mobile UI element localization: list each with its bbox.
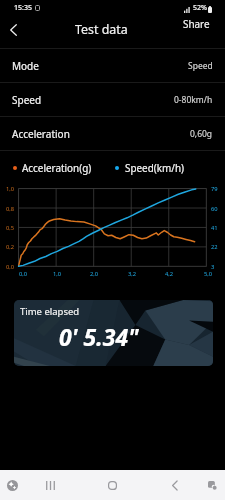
- button[interactable]: Speed: [0, 83, 225, 116]
- button[interactable]: Recent apps: [40, 475, 60, 495]
- button[interactable]: Back: [165, 475, 185, 495]
- staticText: Mode: [12, 59, 39, 73]
- staticText: 3: [211, 263, 215, 271]
- button[interactable]: Mode: [0, 49, 225, 82]
- button[interactable]: Home: [102, 475, 122, 495]
- staticText: Acceleration(g): [22, 161, 92, 174]
- staticText: 3,2: [128, 270, 137, 278]
- button[interactable]: Screenshot: [202, 475, 222, 495]
- button[interactable]: Assistant: [2, 475, 22, 495]
- button[interactable]: Share: [183, 17, 210, 30]
- staticText: 22: [211, 243, 218, 251]
- staticText: Time elapsed: [20, 305, 80, 318]
- staticText: 15:35: [14, 3, 32, 13]
- staticText: 52%: [193, 3, 207, 13]
- staticText: 0' 5.34": [59, 321, 139, 352]
- staticText: 2,0: [90, 270, 99, 278]
- staticText: 0-80km/h: [174, 94, 213, 106]
- staticText: Acceleration: [12, 127, 70, 141]
- staticText: 0,0: [19, 270, 28, 278]
- staticText: 41: [211, 224, 218, 232]
- staticText: 60: [211, 205, 218, 213]
- staticText: 0,8: [6, 205, 15, 213]
- staticText: Test data: [75, 21, 128, 38]
- staticText: 0,0: [6, 263, 15, 271]
- staticText: Speed: [12, 93, 42, 107]
- staticText: 0,2: [6, 243, 15, 251]
- staticText: 1,0: [6, 185, 15, 193]
- staticText: Share: [183, 17, 210, 30]
- staticText: 0,5: [6, 224, 15, 232]
- staticText: 5,0: [204, 270, 213, 278]
- staticText: 4,2: [165, 270, 174, 278]
- staticText: Speed: [188, 60, 213, 72]
- button[interactable]: Back: [2, 17, 24, 43]
- staticText: 79: [211, 185, 218, 193]
- staticText: 1,0: [53, 270, 62, 278]
- staticText: 0,60g: [190, 128, 213, 140]
- staticText: Speed(km/h): [125, 161, 185, 174]
- button[interactable]: Time elapsed: [14, 300, 213, 366]
- button[interactable]: Acceleration: [0, 117, 225, 150]
